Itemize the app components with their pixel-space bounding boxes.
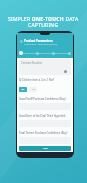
button[interactable]: No: [29, 87, 37, 92]
staticText: SIMPLER ONE-TOUCH DATA: [8, 16, 79, 23]
staticText: Product Parameters: [24, 39, 53, 43]
staticText: Good Item of the Deal Third Hyperlink: [19, 114, 66, 118]
staticText: Good Tariff Purchase Confidence (Buy): [19, 97, 66, 101]
staticText: Q: Did the item a 2-in-1 flat?: [19, 78, 55, 82]
staticText: Total Tenner Purchase Confidence (Buy): [19, 131, 68, 135]
button[interactable]: Contract Number: [19, 59, 71, 75]
staticText: Automated - questions (step 2): [24, 43, 58, 46]
staticText: CAPTURING: [28, 22, 59, 29]
staticText: Next: [43, 147, 48, 150]
button[interactable]: Scan: [64, 70, 67, 73]
button[interactable]: Back: [20, 40, 23, 43]
staticText: No: [32, 88, 35, 91]
staticText: Yes: [21, 88, 25, 91]
button[interactable]: Yes: [19, 87, 27, 92]
button[interactable]: Next: [19, 146, 71, 151]
staticText: Contract Number: [21, 61, 43, 65]
